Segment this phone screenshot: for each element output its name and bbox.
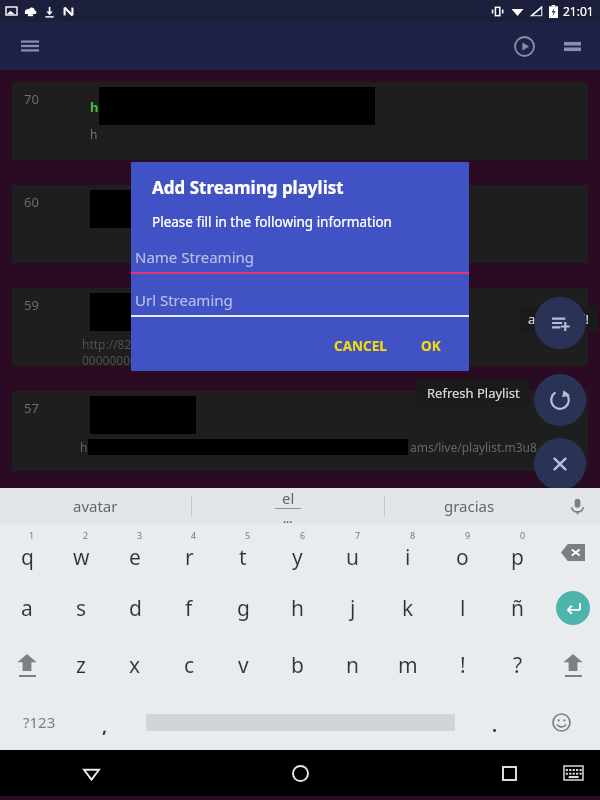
staticText: m (398, 651, 418, 680)
button[interactable]: c (162, 636, 216, 694)
button[interactable]: ? (490, 636, 545, 694)
button[interactable]: Shift (0, 636, 54, 694)
staticText: c (184, 651, 195, 680)
button[interactable]: 6 (270, 524, 325, 580)
staticText: a new Url! (528, 310, 590, 328)
button[interactable]: 60 (12, 185, 588, 263)
staticText: h (80, 439, 88, 455)
button[interactable]: Recents (488, 752, 530, 794)
staticText: 4 (191, 529, 197, 541)
button[interactable]: CANCEL (324, 331, 397, 361)
button[interactable]: 8 (380, 524, 435, 580)
staticText: 00000000 (82, 352, 137, 368)
staticText: 6 (300, 529, 306, 541)
button[interactable]: 57 (12, 391, 588, 471)
staticText: r (185, 543, 194, 572)
button[interactable]: m (380, 636, 435, 694)
button[interactable]: Refresh playlist (534, 374, 586, 426)
button[interactable]: b (270, 636, 325, 694)
button[interactable]: Home (279, 752, 321, 794)
button[interactable]: OK (411, 331, 451, 361)
button[interactable]: x (108, 636, 162, 694)
staticText: 59 (24, 296, 39, 314)
button[interactable]: 1 (0, 524, 54, 580)
button[interactable]: , (78, 694, 132, 750)
staticText: Add Streaming playlist (152, 176, 344, 199)
button[interactable]: g (216, 580, 270, 636)
button[interactable]: f (162, 580, 216, 636)
button[interactable]: Back (70, 752, 112, 794)
button[interactable]: n (325, 636, 380, 694)
button[interactable]: 70 (12, 82, 588, 160)
button[interactable]: z (54, 636, 108, 694)
staticText: Refresh Playlist (427, 384, 520, 402)
button[interactable]: ! (435, 636, 490, 694)
button[interactable]: Shift (545, 636, 600, 694)
staticText: 21:01 (563, 3, 594, 19)
button[interactable]: ñ (490, 580, 545, 636)
staticText: l (460, 594, 466, 623)
button[interactable]: Play (504, 26, 544, 66)
button[interactable]: v (216, 636, 270, 694)
button[interactable]: List options (552, 26, 592, 66)
button[interactable]: Url Streaming (131, 290, 469, 317)
staticText: d (129, 594, 142, 623)
staticText: Url Streaming (135, 290, 233, 310)
button[interactable]: Close (534, 438, 586, 490)
staticText: y (292, 543, 303, 572)
button[interactable]: 3 (108, 524, 162, 580)
staticText: b (291, 651, 304, 680)
staticText: o (456, 543, 469, 572)
button[interactable]: d (108, 580, 162, 636)
staticText: w (73, 543, 90, 572)
staticText: j (350, 594, 356, 623)
button[interactable]: k (380, 580, 435, 636)
button[interactable]: s (54, 580, 108, 636)
staticText: el (282, 488, 295, 508)
staticText: http://82.7 (82, 336, 142, 352)
staticText: x (129, 651, 141, 680)
button[interactable]: j (325, 580, 380, 636)
staticText: CANCEL (334, 337, 387, 355)
button[interactable]: Voice input (554, 488, 600, 524)
button[interactable]: Space (132, 694, 468, 750)
button[interactable]: gracias (385, 488, 554, 524)
staticText: u (346, 543, 359, 572)
button[interactable]: Switch keyboard (556, 756, 590, 790)
staticText: OK (421, 337, 441, 355)
button[interactable]: h (270, 580, 325, 636)
button[interactable]: 5 (216, 524, 270, 580)
button[interactable]: Menu (10, 26, 50, 66)
button[interactable]: 0 (490, 524, 545, 580)
button[interactable]: 9 (435, 524, 490, 580)
button[interactable]: 7 (325, 524, 380, 580)
button[interactable]: l (435, 580, 490, 636)
button[interactable]: 2 (54, 524, 108, 580)
button[interactable]: Emoji (522, 694, 600, 750)
staticText: g (237, 594, 250, 623)
staticText: h (90, 126, 98, 142)
button[interactable]: Backspace (545, 524, 600, 580)
staticText: ... (283, 511, 293, 524)
staticText: 9 (465, 529, 471, 541)
staticText: ams/live/playlist.m3u8 (410, 439, 537, 455)
button[interactable]: a (0, 580, 54, 636)
staticText: i (405, 543, 411, 572)
staticText: gracias (444, 496, 495, 516)
staticText: ?123 (23, 712, 56, 732)
button[interactable]: 59 (12, 288, 588, 366)
staticText: p (511, 543, 524, 572)
staticText: Please fill in the following information (152, 213, 392, 231)
button[interactable]: avatar (0, 488, 191, 524)
staticText: ? (513, 651, 523, 680)
button[interactable]: Name Streaming (131, 247, 469, 274)
button[interactable]: Enter (545, 580, 600, 636)
button[interactable]: . (468, 694, 522, 750)
staticText: 0 (520, 529, 526, 541)
button[interactable]: ?123 (0, 694, 78, 750)
button[interactable]: 4 (162, 524, 216, 580)
staticText: . (492, 713, 498, 738)
button[interactable]: Add playlist (534, 297, 586, 349)
button[interactable]: el (192, 488, 384, 524)
staticText: Name Streaming (135, 247, 255, 267)
